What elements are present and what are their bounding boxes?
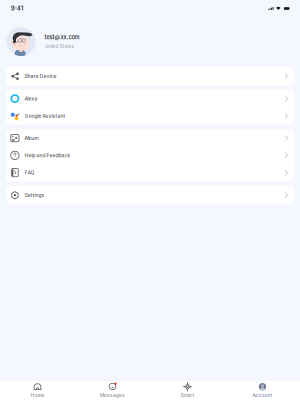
staticText: Messages (100, 392, 125, 398)
staticText: Share Device (25, 73, 57, 79)
staticText: Home (30, 392, 44, 398)
button[interactable]: Album (6, 129, 294, 147)
button[interactable]: FAQ (6, 164, 294, 181)
button[interactable]: Help and Feedback (6, 147, 294, 164)
button[interactable]: test@xx.com (0, 17, 300, 66)
button[interactable]: Messages (75, 381, 150, 400)
button[interactable]: Home (0, 381, 75, 400)
staticText: Help and Feedback (25, 152, 71, 158)
staticText: Settings (25, 192, 45, 198)
staticText: United States (44, 44, 73, 49)
button[interactable]: Settings (6, 186, 294, 204)
button[interactable]: Alexa (6, 90, 294, 107)
staticText: 9:41 (11, 5, 23, 12)
staticText: Alexa (25, 96, 38, 102)
staticText: Account (252, 392, 272, 398)
button[interactable]: Smart (150, 381, 225, 400)
button[interactable]: Share Device (6, 67, 294, 85)
button[interactable]: Account (225, 381, 300, 400)
button[interactable]: Google Assistant (6, 107, 294, 124)
staticText: FAQ (25, 170, 35, 176)
staticText: Album (25, 135, 39, 141)
staticText: Google Assistant (25, 113, 66, 119)
staticText: test@xx.com (44, 34, 79, 41)
staticText: Smart (180, 392, 194, 398)
